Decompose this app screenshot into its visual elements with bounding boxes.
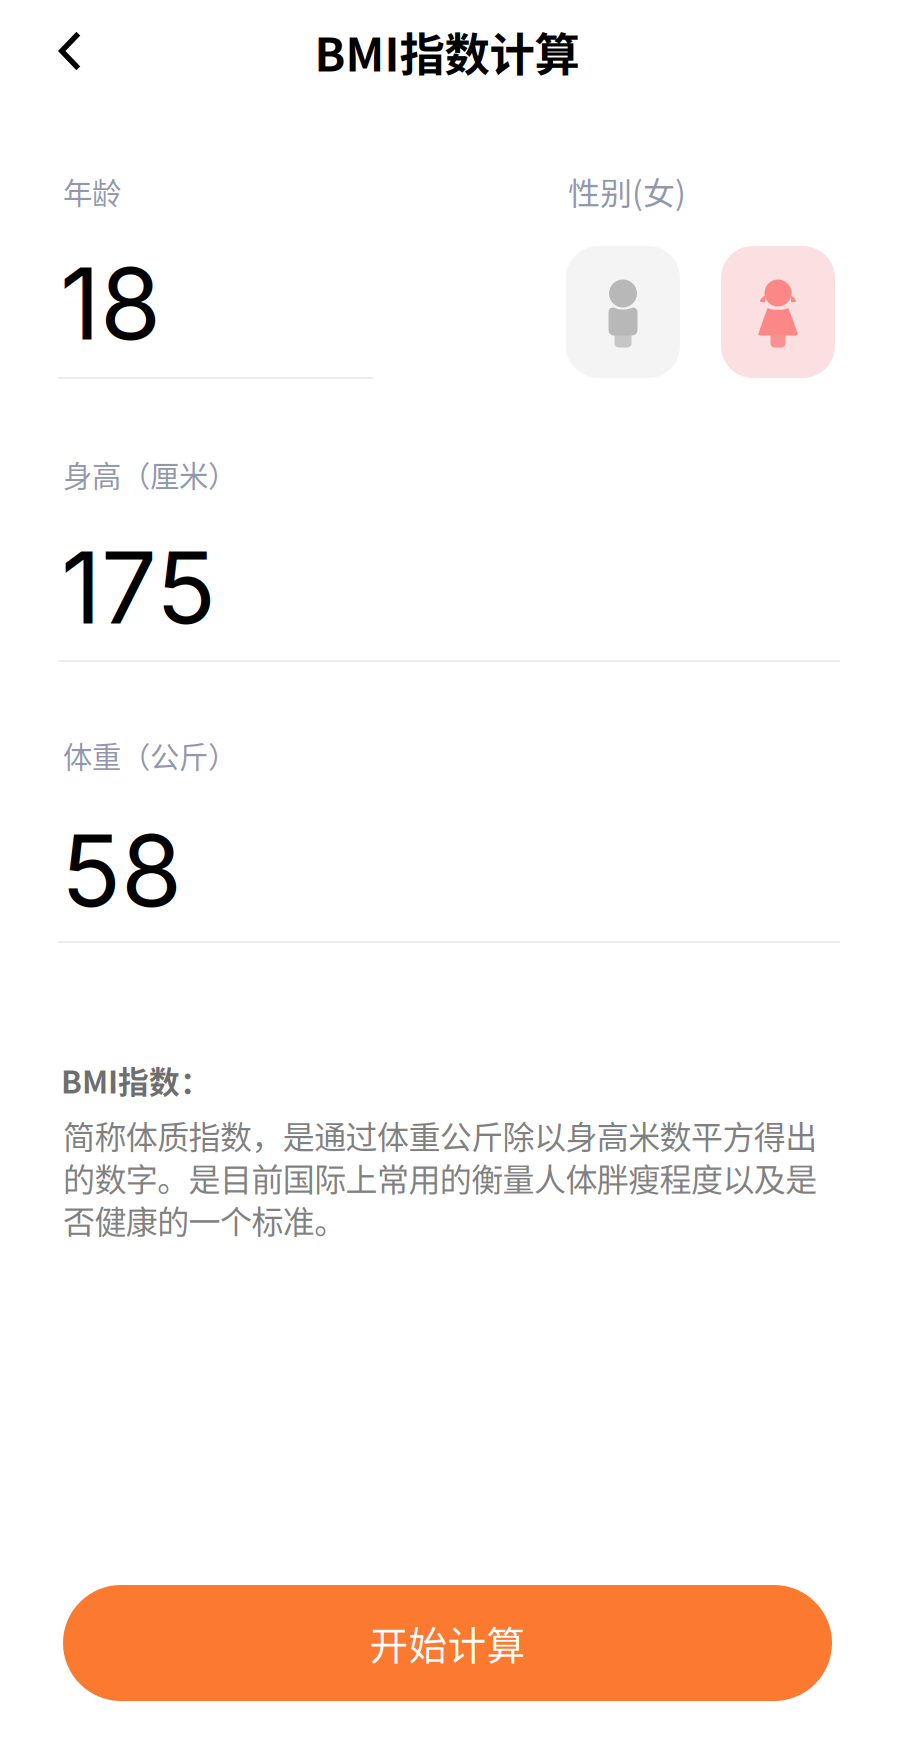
- button[interactable]: Back: [30, 11, 110, 91]
- staticText: 身高（厘米）: [63, 453, 237, 495]
- staticText: BMI指数：: [61, 1058, 211, 1102]
- staticText: 175: [61, 528, 216, 647]
- button[interactable]: 开始计算: [63, 1585, 832, 1701]
- button[interactable]: Male: [566, 246, 680, 378]
- staticText: 开始计算: [369, 1615, 525, 1671]
- staticText: 体重（公斤）: [63, 734, 237, 776]
- staticText: 58: [61, 811, 182, 930]
- staticText: 简称体质指数，是通过体重公斤除以身高米数平方得出的数字。是目前国际上常用的衡量人…: [63, 1112, 817, 1243]
- staticText: BMI指数计算: [314, 19, 579, 85]
- staticText: 性别(女): [568, 168, 686, 214]
- staticText: 年龄: [63, 170, 121, 212]
- staticText: 18: [60, 244, 161, 363]
- button[interactable]: Female: [721, 246, 835, 378]
